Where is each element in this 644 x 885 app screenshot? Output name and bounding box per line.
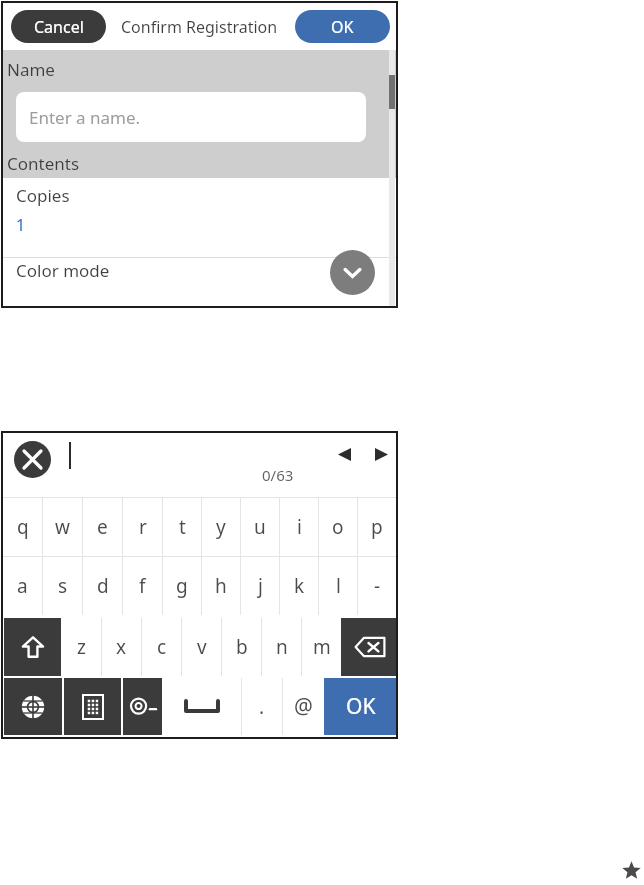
button[interactable]: Copies: [3, 178, 396, 258]
button[interactable]: k: [280, 557, 318, 615]
staticText: a: [17, 573, 28, 599]
button[interactable]: s: [43, 557, 82, 615]
staticText: s: [58, 573, 68, 599]
staticText: l: [336, 573, 341, 599]
button[interactable]: w: [43, 498, 82, 556]
staticText: Contents: [7, 152, 80, 175]
staticText: p: [371, 514, 383, 540]
button[interactable]: y: [202, 498, 240, 556]
staticText: z: [77, 634, 86, 660]
button[interactable]: Clear text: [14, 441, 51, 478]
staticText: h: [215, 573, 227, 599]
button[interactable]: n: [262, 618, 301, 676]
staticText: Enter a name.: [29, 106, 141, 129]
staticText: OK: [346, 692, 376, 721]
button[interactable]: j: [241, 557, 279, 615]
button[interactable]: At sign: [283, 678, 324, 735]
button[interactable]: b: [222, 618, 261, 676]
button[interactable]: a: [3, 557, 42, 615]
button[interactable]: m: [302, 618, 341, 676]
staticText: t: [179, 514, 186, 540]
button[interactable]: f: [123, 557, 162, 615]
button[interactable]: Space: [162, 678, 241, 735]
staticText: @: [294, 692, 313, 721]
staticText: Cancel: [34, 16, 84, 38]
staticText: Copies: [16, 184, 70, 207]
staticText: m: [313, 634, 331, 660]
button[interactable]: Enter a name.: [16, 92, 366, 142]
button[interactable]: OK: [324, 678, 398, 735]
button[interactable]: Backspace: [341, 618, 398, 676]
button[interactable]: c: [142, 618, 181, 676]
staticText: -: [374, 573, 381, 599]
button[interactable]: z: [62, 618, 101, 676]
button[interactable]: Move left: [333, 443, 355, 465]
staticText: n: [276, 634, 288, 660]
staticText: v: [197, 634, 207, 660]
staticText: y: [216, 514, 226, 540]
staticText: r: [139, 514, 147, 540]
staticText: b: [236, 634, 248, 660]
staticText: c: [157, 634, 167, 660]
button[interactable]: h: [202, 557, 240, 615]
button[interactable]: .: [242, 678, 282, 735]
button[interactable]: Change language: [4, 678, 62, 735]
button[interactable]: Scroll down: [330, 250, 375, 295]
staticText: o: [332, 514, 344, 540]
button[interactable]: Numeric keypad: [64, 678, 121, 735]
staticText: x: [116, 634, 127, 660]
staticText: w: [55, 514, 70, 540]
staticText: j: [258, 573, 263, 599]
button[interactable]: e: [83, 498, 122, 556]
button[interactable]: q: [3, 498, 42, 556]
button[interactable]: g: [163, 557, 201, 615]
staticText: q: [17, 514, 29, 540]
button[interactable]: Shift: [4, 618, 61, 676]
button[interactable]: p: [358, 498, 396, 556]
staticText: OK: [331, 16, 354, 38]
staticText: 1: [16, 214, 26, 236]
button[interactable]: t: [163, 498, 201, 556]
staticText: Confirm Registration: [121, 16, 278, 38]
staticText: f: [139, 573, 146, 599]
button[interactable]: d: [83, 557, 122, 615]
staticText: Name: [7, 58, 55, 81]
button[interactable]: -: [358, 557, 396, 615]
button[interactable]: Symbols: [123, 678, 162, 735]
button[interactable]: r: [123, 498, 162, 556]
button[interactable]: o: [319, 498, 357, 556]
button[interactable]: i: [280, 498, 318, 556]
staticText: g: [176, 573, 188, 599]
staticText: 0/63: [262, 465, 294, 485]
button[interactable]: x: [102, 618, 141, 676]
button[interactable]: l: [319, 557, 357, 615]
staticText: .: [259, 694, 265, 720]
staticText: e: [97, 514, 108, 540]
button[interactable]: Move right: [370, 443, 392, 465]
staticText: i: [297, 514, 302, 540]
button[interactable]: Cancel: [11, 10, 106, 43]
button[interactable]: v: [182, 618, 221, 676]
staticText: d: [97, 573, 109, 599]
button[interactable]: u: [241, 498, 279, 556]
staticText: u: [254, 514, 266, 540]
staticText: Color mode: [16, 259, 110, 282]
staticText: k: [294, 573, 305, 599]
button[interactable]: OK: [295, 10, 390, 43]
